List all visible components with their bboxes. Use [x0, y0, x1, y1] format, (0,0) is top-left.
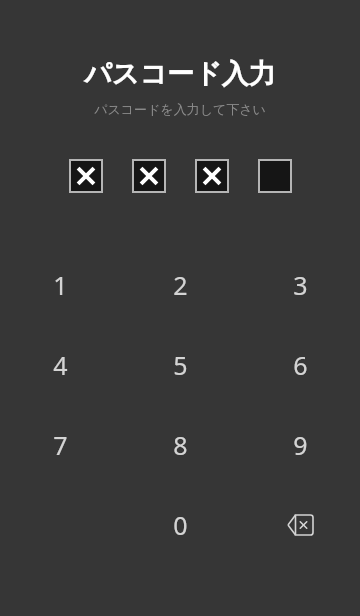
button[interactable]: 2: [120, 245, 240, 325]
button[interactable]: 9: [240, 405, 360, 485]
staticText: 7: [53, 428, 68, 462]
button[interactable]: 6: [240, 325, 360, 405]
button[interactable]: 5: [120, 325, 240, 405]
button[interactable]: [258, 159, 292, 193]
staticText: 5: [173, 348, 188, 382]
staticText: 2: [173, 268, 188, 302]
button[interactable]: 0: [120, 485, 240, 565]
button[interactable]: 4: [0, 325, 120, 405]
staticText: 0: [173, 508, 188, 542]
staticText: パスコード入力: [84, 57, 276, 91]
staticText: 6: [293, 348, 308, 382]
button[interactable]: [132, 159, 166, 193]
staticText: 9: [293, 428, 308, 462]
staticText: 3: [293, 268, 308, 302]
staticText: 4: [53, 348, 68, 382]
button[interactable]: 8: [120, 405, 240, 485]
button[interactable]: [195, 159, 229, 193]
staticText: パスコードを入力して下さい: [94, 101, 266, 117]
staticText: 8: [173, 428, 188, 462]
button[interactable]: 3: [240, 245, 360, 325]
staticText: 1: [53, 268, 68, 302]
button[interactable]: 7: [0, 405, 120, 485]
button[interactable]: 1: [0, 245, 120, 325]
button[interactable]: [69, 159, 103, 193]
button[interactable]: Backspace: [240, 485, 360, 565]
